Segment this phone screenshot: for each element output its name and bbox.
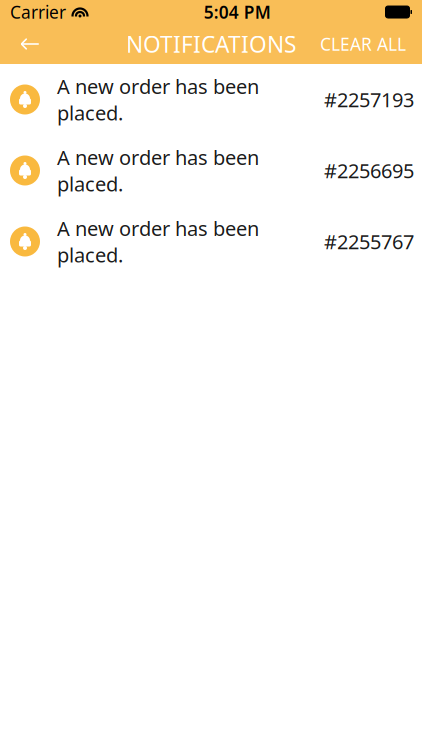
staticText: CLEAR ALL [320,32,406,55]
staticText: #2255767 [324,228,414,255]
staticText: A new order has been placed. [57,215,259,268]
staticText: #2257193 [324,86,414,113]
staticText: A new order has been placed. [57,73,259,126]
button[interactable]: CLEAR ALL [312,24,414,64]
button[interactable]: Back [8,24,52,64]
staticText: Carrier [10,0,66,23]
staticText: A new order has been placed. [57,144,259,197]
staticText: NOTIFICATIONS [126,29,296,59]
staticText: 5:04 PM [204,0,271,23]
button[interactable]: A new order has been placed. [0,64,422,135]
staticText: #2256695 [324,157,414,184]
button[interactable]: A new order has been placed. [0,135,422,206]
button[interactable]: A new order has been placed. [0,206,422,277]
